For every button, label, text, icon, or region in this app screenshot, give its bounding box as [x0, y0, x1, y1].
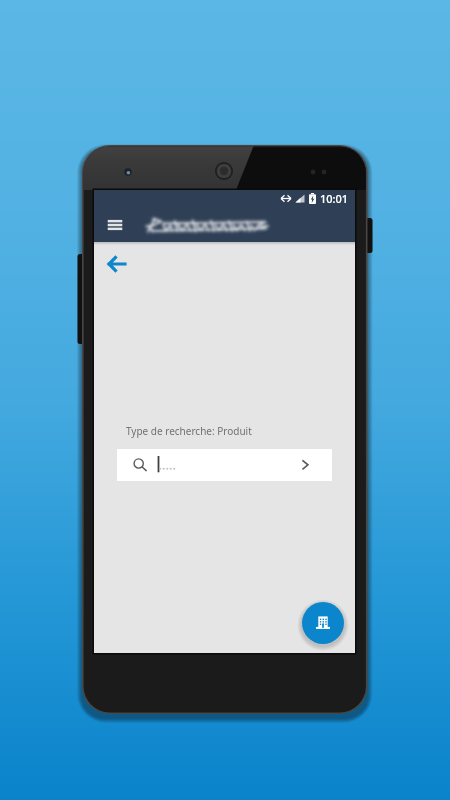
button[interactable]: Back	[103, 250, 131, 278]
staticText: Type de recherche: Produit	[126, 424, 252, 438]
button[interactable]: Add company	[302, 602, 344, 644]
button[interactable]: Submit search	[292, 451, 320, 479]
button[interactable]: Submit search	[117, 449, 332, 481]
button[interactable]: Menu	[100, 210, 130, 240]
staticText: 10:01	[320, 191, 349, 206]
